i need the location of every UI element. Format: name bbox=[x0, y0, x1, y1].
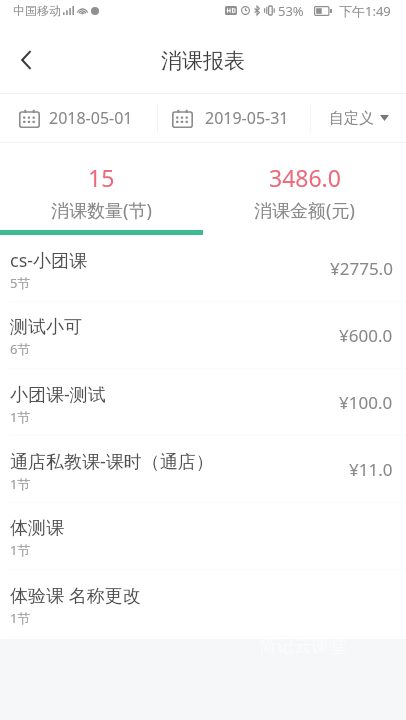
button[interactable]: 小团课-测试 bbox=[0, 369, 406, 435]
button[interactable]: 体测课 bbox=[0, 503, 406, 569]
button[interactable]: Back bbox=[0, 34, 52, 86]
staticText: 体测课 bbox=[10, 517, 64, 540]
staticText: 消课数量(节) bbox=[51, 198, 152, 223]
staticText: 1节 bbox=[10, 609, 31, 627]
button[interactable]: 2019-05-31 bbox=[158, 94, 310, 142]
button[interactable]: 2018-05-01 bbox=[0, 94, 157, 142]
staticText: 2019-05-31 bbox=[205, 107, 289, 129]
button[interactable]: 体验课 名称更改 bbox=[0, 570, 406, 636]
staticText: 15 bbox=[88, 162, 115, 193]
staticText: 1节 bbox=[10, 541, 31, 559]
button[interactable]: 测试小可 bbox=[0, 302, 406, 368]
staticText: 体验课 名称更改 bbox=[10, 583, 141, 608]
staticText: cs-小团课 bbox=[10, 248, 88, 273]
staticText: 小团课-测试 bbox=[10, 382, 106, 407]
staticText: 测试小可 bbox=[10, 316, 82, 339]
staticText: 53% bbox=[278, 2, 304, 20]
staticText: ¥100.0 bbox=[339, 391, 393, 414]
staticText: ¥600.0 bbox=[339, 324, 393, 347]
staticText: 中国移动 bbox=[13, 3, 61, 18]
staticText: 6节 bbox=[10, 340, 31, 358]
staticText: ¥2775.0 bbox=[330, 257, 393, 280]
staticText: 自定义 bbox=[329, 109, 374, 128]
staticText: 5节 bbox=[10, 274, 31, 292]
button[interactable]: 15 bbox=[0, 143, 203, 235]
staticText: 通店私教课-课时（通店） bbox=[10, 449, 214, 474]
staticText: 1节 bbox=[10, 408, 31, 426]
staticText: 下午1:49 bbox=[339, 2, 391, 20]
button[interactable]: cs-小团课 bbox=[0, 235, 406, 301]
staticText: 简记云课堂 bbox=[259, 635, 347, 657]
staticText: 3486.0 bbox=[269, 162, 341, 193]
button[interactable]: 3486.0 bbox=[203, 143, 406, 235]
button[interactable]: 通店私教课-课时（通店） bbox=[0, 436, 406, 502]
staticText: 2018-05-01 bbox=[49, 107, 133, 129]
staticText: 消课金额(元) bbox=[254, 198, 355, 223]
staticText: ¥11.0 bbox=[349, 458, 393, 481]
staticText: 1节 bbox=[10, 475, 31, 493]
button[interactable]: 自定义 bbox=[311, 94, 406, 142]
staticText: 消课报表 bbox=[161, 48, 245, 74]
